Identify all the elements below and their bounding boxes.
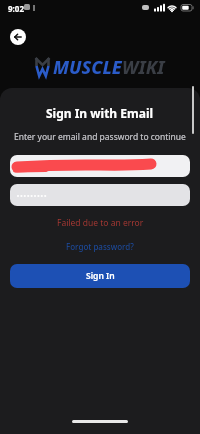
button[interactable]: Forgot password? xyxy=(66,241,134,252)
staticText: Failed due to an error xyxy=(57,217,144,229)
button[interactable]: Sign In xyxy=(10,264,190,288)
staticText: Sign In with Email xyxy=(46,105,154,121)
staticText: WIKI xyxy=(122,55,165,80)
button[interactable] xyxy=(10,155,190,177)
button[interactable] xyxy=(10,29,26,45)
staticText: Sign In xyxy=(86,270,115,282)
button[interactable] xyxy=(10,184,190,206)
staticText: 9:02 xyxy=(8,3,24,14)
staticText: Enter your email and password to continu… xyxy=(14,131,186,143)
staticText: MUSCLE xyxy=(53,55,122,80)
